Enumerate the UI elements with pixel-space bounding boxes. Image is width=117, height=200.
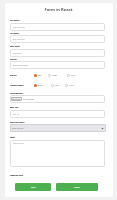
staticText: Your best Subject	[10, 84, 24, 86]
staticText: About	[10, 136, 15, 138]
staticText: Female	[52, 74, 58, 76]
button[interactable]: About your self	[10, 140, 105, 167]
button[interactable]: Choose File	[11, 97, 22, 101]
staticText: Choose File	[12, 98, 21, 100]
staticText: Select your choice	[10, 121, 25, 123]
button[interactable]: Reset	[15, 183, 51, 191]
button[interactable]: Other	[67, 73, 76, 77]
staticText: Submit OR Reset	[10, 174, 24, 176]
staticText: Enter First Name	[13, 26, 25, 28]
staticText: Physics	[69, 84, 75, 86]
staticText: Submit OR Reset	[10, 174, 24, 176]
button[interactable]: Enter First Name	[10, 23, 105, 31]
staticText: About your self	[13, 142, 24, 144]
staticText: Maths	[55, 84, 60, 86]
button[interactable]: Select your item	[10, 124, 106, 132]
button[interactable]: Enter Last Name	[10, 35, 105, 43]
staticText: No file selected	[23, 98, 34, 100]
staticText: Last Name*	[10, 32, 20, 34]
staticText: Enter Email*	[10, 45, 20, 47]
staticText: Gender*	[10, 74, 17, 76]
staticText: Upload Resume*	[10, 92, 24, 94]
button[interactable]: Enter email	[10, 49, 105, 57]
staticText: First Name*	[10, 19, 20, 21]
staticText: Contact*	[10, 58, 18, 60]
staticText: Enter Mobile number	[13, 64, 29, 66]
button[interactable]: Physics	[65, 83, 75, 87]
staticText: Other	[71, 74, 76, 76]
button[interactable]: English	[34, 83, 44, 87]
staticText: Form in React	[44, 7, 73, 13]
staticText: Enter email	[13, 52, 22, 54]
staticText: Contact*	[10, 58, 18, 60]
staticText: Male	[38, 74, 42, 76]
button[interactable]: Male	[34, 73, 42, 77]
staticText: Submit	[74, 186, 80, 188]
staticText: Enter Email*	[10, 45, 20, 47]
staticText: English	[38, 84, 44, 86]
staticText: Enter URL*	[10, 106, 19, 108]
staticText: Enter URL*	[10, 106, 19, 108]
button[interactable]: Enter url	[10, 110, 105, 118]
button[interactable]: Choose File	[10, 95, 105, 103]
button[interactable]: Submit	[56, 183, 98, 191]
staticText: Your best Subject	[10, 84, 24, 86]
staticText: Reset	[31, 186, 36, 188]
staticText: Enter url	[13, 113, 20, 115]
button[interactable]: Female	[48, 73, 58, 77]
staticText: Enter Last Name	[13, 38, 25, 40]
staticText: Select your item	[12, 127, 24, 129]
staticText: About	[10, 136, 15, 138]
button[interactable]: Maths	[51, 83, 60, 87]
staticText: First Name*	[10, 19, 20, 21]
staticText: Last Name*	[10, 32, 20, 34]
staticText: Select your choice	[10, 121, 25, 123]
staticText: Upload Resume*	[10, 92, 24, 94]
button[interactable]: Enter Mobile number	[10, 61, 105, 69]
staticText: Gender*	[10, 74, 17, 76]
